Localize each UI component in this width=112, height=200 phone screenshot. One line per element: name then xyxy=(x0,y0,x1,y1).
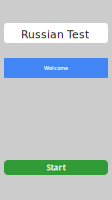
staticText: Start xyxy=(46,162,65,173)
button[interactable]: Start xyxy=(4,160,108,175)
button[interactable]: Welcome xyxy=(4,58,108,78)
staticText: Russian Test xyxy=(21,28,89,41)
staticText: Welcome xyxy=(44,64,68,72)
